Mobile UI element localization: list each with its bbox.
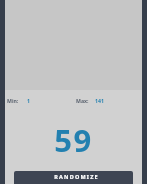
- staticText: 59: [5, 119, 142, 161]
- staticText: Max:: [76, 97, 89, 104]
- button[interactable]: RANDOMIZE: [14, 171, 133, 184]
- staticText: 141: [95, 97, 104, 104]
- staticText: Min:: [7, 97, 19, 104]
- button[interactable]: Max:: [76, 96, 104, 105]
- staticText: RANDOMIZE: [17, 173, 133, 180]
- staticText: 1: [27, 97, 30, 104]
- button[interactable]: Min:: [7, 96, 30, 105]
